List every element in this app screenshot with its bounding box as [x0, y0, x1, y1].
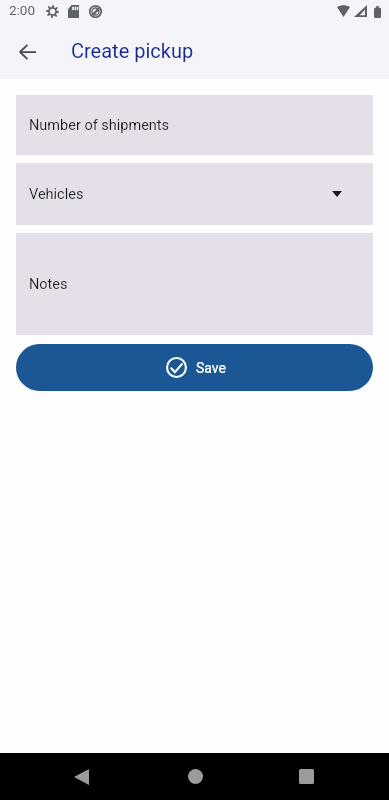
staticText: Notes [29, 276, 68, 293]
button[interactable]: Number of shipments [16, 95, 373, 155]
staticText: Number of shipments [29, 117, 170, 134]
staticText: Save [196, 360, 226, 376]
button[interactable]: Recent apps [277, 753, 335, 800]
staticText: Create pickup [71, 39, 194, 62]
button[interactable]: Notes [16, 233, 373, 335]
button[interactable]: Save [16, 344, 373, 391]
button[interactable]: Vehicles [16, 163, 373, 225]
button[interactable]: Back [52, 753, 110, 800]
button[interactable]: Back [4, 28, 51, 75]
staticText: 2:00 [9, 2, 36, 18]
staticText: Vehicles [29, 186, 84, 203]
button[interactable]: Home [166, 753, 224, 800]
